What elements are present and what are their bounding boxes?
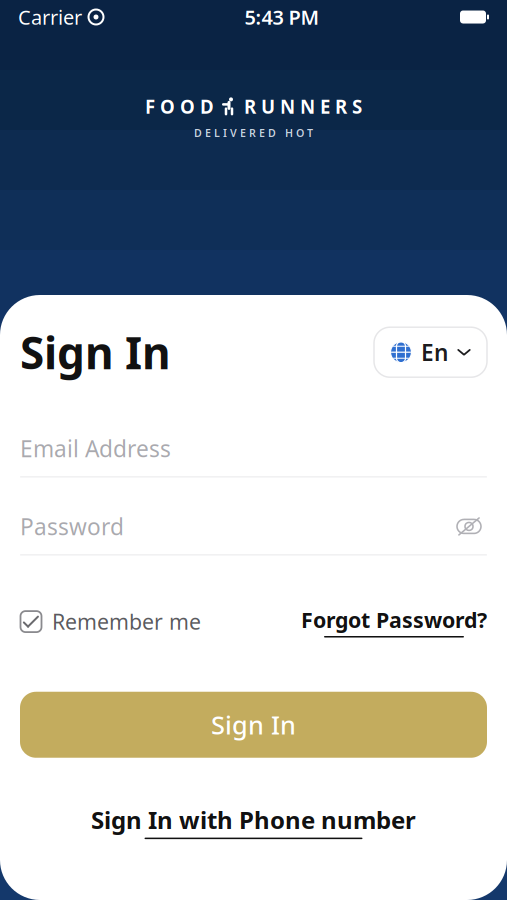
- staticText: Email Address: [20, 433, 171, 463]
- staticText: En: [421, 337, 448, 367]
- staticText: Sign In: [20, 323, 171, 381]
- staticText: R U N N E R S: [244, 94, 362, 119]
- button[interactable]: Forgot Password?: [301, 602, 487, 641]
- button[interactable]: Show password: [451, 515, 487, 537]
- button[interactable]: Language, English: [374, 327, 487, 377]
- button[interactable]: Sign In with Phone number: [91, 800, 416, 843]
- staticText: D E L I V E R E D H O T: [194, 126, 313, 140]
- staticText: Password: [20, 511, 124, 541]
- staticText: Sign In with Phone number: [91, 804, 416, 836]
- staticText: 5:43 PM: [244, 4, 319, 30]
- button[interactable]: Sign In: [20, 692, 487, 758]
- staticText: Remember me: [52, 607, 201, 636]
- staticText: Forgot Password?: [301, 606, 487, 634]
- button[interactable]: Remember me: [20, 601, 201, 642]
- staticText: F O O D: [145, 94, 214, 119]
- staticText: Sign In: [211, 708, 296, 741]
- staticText: Carrier: [18, 4, 82, 30]
